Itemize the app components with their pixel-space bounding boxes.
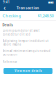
staticText: Transaction (16, 5, 39, 10)
staticText: Enim ad minim veniam quis nostrud exerci… (2, 49, 50, 56)
staticText: 9:41 (3, 0, 10, 4)
button[interactable]: View more details (3, 68, 52, 74)
staticText: ◼◼▮ (48, 1, 53, 4)
button[interactable]: Back (1, 4, 8, 11)
staticText: Details (2, 23, 12, 27)
staticText: Adipiscing tempor incididunt ut labore m… (2, 39, 48, 46)
staticText: ‹ (3, 3, 5, 12)
staticText: View more details (14, 69, 41, 73)
staticText: $1,248.50 (37, 13, 53, 18)
staticText: Lorem ipsum dolor sit amet consectetur e… (2, 29, 39, 36)
staticText: Checking (2, 13, 20, 18)
staticText: Reference (2, 60, 17, 64)
